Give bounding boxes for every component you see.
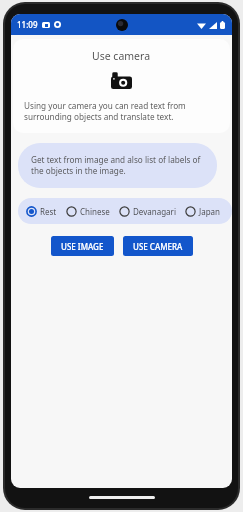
button[interactable]: USE IMAGE: [51, 236, 114, 256]
staticText: 11:09: [17, 19, 38, 30]
staticText: USE CAMERA: [133, 241, 183, 252]
staticText: Use camera: [92, 49, 151, 63]
staticText: USE IMAGE: [61, 241, 104, 252]
button[interactable]: Use camera: [13, 39, 230, 133]
staticText: Chinese: [80, 206, 110, 217]
button[interactable]: Chinese: [66, 206, 110, 217]
button[interactable]: Devanagari: [119, 206, 176, 217]
button[interactable]: Get text from image and also list of lab…: [18, 143, 217, 188]
button[interactable]: Japan: [185, 206, 221, 217]
staticText: Rest: [40, 206, 57, 217]
staticText: Using your camera you can read text from…: [24, 100, 219, 123]
staticText: Get text from image and also list of lab…: [31, 154, 204, 177]
staticText: Japan: [199, 206, 221, 217]
other: Camera: [111, 72, 132, 89]
staticText: Devanagari: [133, 206, 176, 217]
button[interactable]: USE CAMERA: [123, 236, 193, 256]
button[interactable]: Rest: [26, 206, 57, 217]
